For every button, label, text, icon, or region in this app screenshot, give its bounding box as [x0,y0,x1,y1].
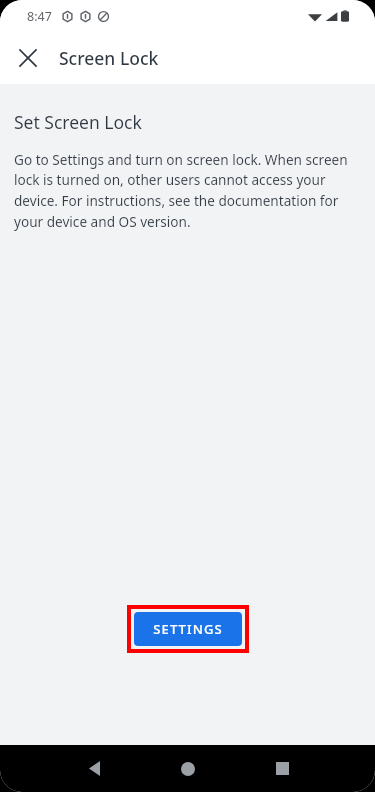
staticText: SETTINGS [153,620,223,638]
staticText: Set Screen Lock [14,110,142,134]
staticText: 8:47 [27,8,52,25]
staticText: Screen Lock [59,46,159,70]
button[interactable]: Home [141,745,235,792]
staticText: Go to Settings and turn on screen lock. … [14,150,357,231]
button[interactable]: Back [47,745,141,792]
button[interactable]: Recent apps [235,745,329,792]
button[interactable]: SETTINGS [134,612,242,646]
button[interactable]: Close [8,38,48,78]
